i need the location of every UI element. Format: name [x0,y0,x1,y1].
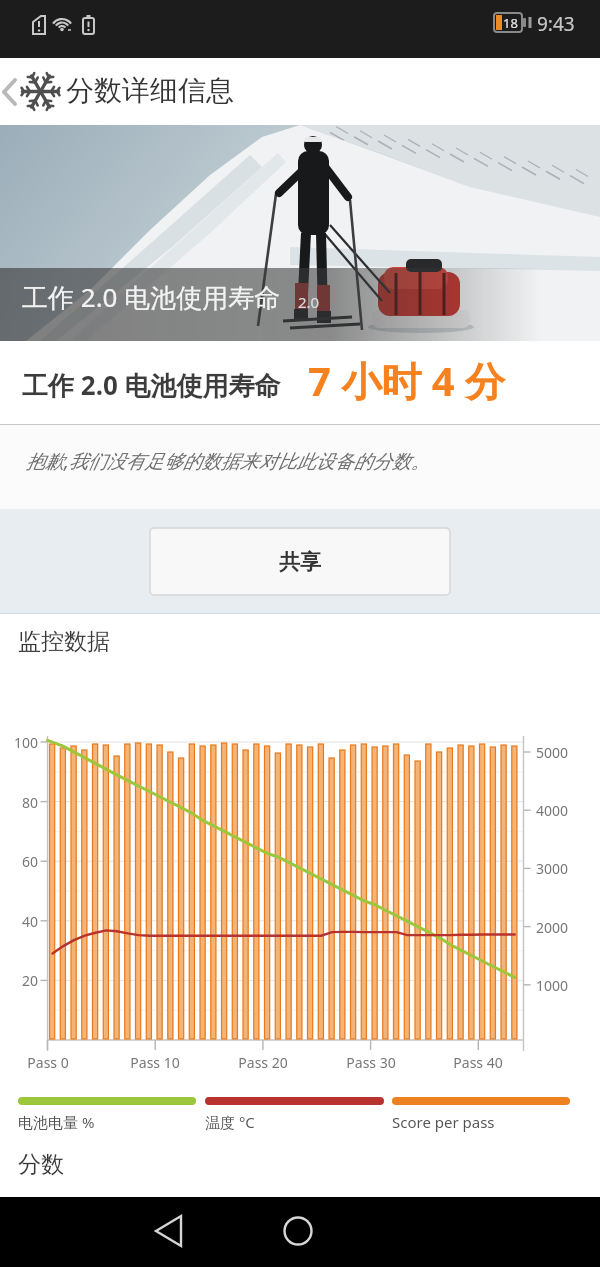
staticText: 监控数据 [18,627,110,656]
staticText: Score per pass [392,1112,495,1132]
staticText: 2.0 [298,292,320,312]
button[interactable]: 共享 [150,528,450,595]
staticText: 5000 [536,743,569,762]
button[interactable] [140,1197,200,1267]
staticText: 80 [2,793,38,812]
staticText: Pass 20 [233,1053,293,1072]
staticText: 抱歉,我们没有足够的数据来对比此设备的分数。 [26,448,430,474]
staticText: 分数 [18,1150,64,1179]
staticText: 4000 [536,801,569,820]
staticText: 工作 2.0 电池使用寿命 [22,279,281,315]
staticText: 100 [2,733,38,752]
button[interactable] [0,70,62,116]
staticText: 工作 2.0 电池使用寿命 [22,367,281,403]
staticText: 18 [503,14,518,32]
staticText: 20 [2,971,38,990]
staticText: 1000 [536,976,569,995]
staticText: 分数详细信息 [66,73,234,108]
staticText: 9:43 [537,11,575,37]
staticText: 7 小时 4 分 [308,353,505,408]
staticText: Pass 30 [341,1053,401,1072]
staticText: 3000 [536,859,569,878]
staticText: 40 [2,912,38,931]
staticText: 温度 °C [205,1112,255,1132]
staticText: 共享 [279,549,321,575]
button[interactable] [268,1197,328,1267]
staticText: Pass 0 [18,1053,78,1072]
staticText: 60 [2,852,38,871]
staticText: 2000 [536,918,569,937]
staticText: Pass 10 [125,1053,185,1072]
staticText: 电池电量 % [18,1112,95,1132]
staticText: Pass 40 [448,1053,508,1072]
